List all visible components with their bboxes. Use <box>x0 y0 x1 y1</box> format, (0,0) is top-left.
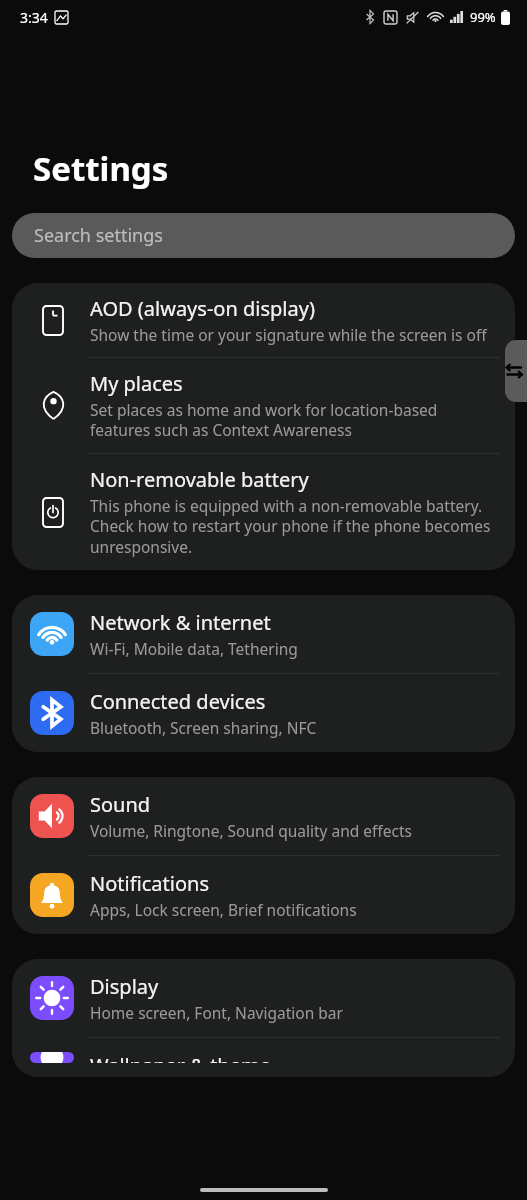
staticText: Bluetooth, Screen sharing, NFC <box>90 717 317 738</box>
staticText: Volume, Ringtone, Sound quality and effe… <box>90 820 412 841</box>
button[interactable]: Switch <box>505 340 527 402</box>
button[interactable]: My places <box>12 358 515 453</box>
staticText: Home screen, Font, Navigation bar <box>90 1002 343 1023</box>
staticText: Non-removable battery <box>90 466 309 493</box>
staticText: Settings <box>33 146 169 191</box>
button[interactable]: Connected devices <box>12 674 515 752</box>
button[interactable]: Wallpaper & theme <box>12 1038 515 1077</box>
staticText: Connected devices <box>90 688 266 715</box>
staticText: Set places as home and work for location… <box>90 399 497 441</box>
staticText: 3:34 <box>20 8 48 27</box>
staticText: Network & internet <box>90 609 271 636</box>
button[interactable]: AOD (always-on display) <box>12 283 515 357</box>
staticText: Search settings <box>34 223 163 248</box>
button[interactable]: Display <box>12 959 515 1037</box>
staticText: Notifications <box>90 870 209 897</box>
staticText: AOD (always-on display) <box>90 295 315 322</box>
staticText: 99% <box>470 8 496 26</box>
staticText: Display <box>90 973 159 1000</box>
staticText: Apps, Lock screen, Brief notifications <box>90 899 357 920</box>
button[interactable]: Search settings <box>12 213 515 258</box>
staticText: This phone is equipped with a non-remova… <box>90 495 497 558</box>
button[interactable]: Sound <box>12 777 515 855</box>
button[interactable]: Non-removable battery <box>12 454 515 570</box>
button[interactable]: Notifications <box>12 856 515 934</box>
staticText: Show the time or your signature while th… <box>90 324 487 345</box>
staticText: Wallpaper & theme <box>90 1052 271 1063</box>
button[interactable]: Network & internet <box>12 595 515 673</box>
staticText: Wi-Fi, Mobile data, Tethering <box>90 638 298 659</box>
staticText: My places <box>90 370 183 397</box>
staticText: Sound <box>90 791 151 818</box>
